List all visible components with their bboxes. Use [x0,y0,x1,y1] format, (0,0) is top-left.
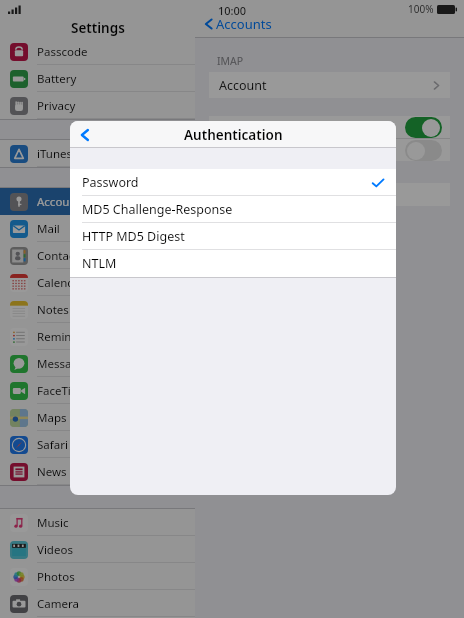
button[interactable]: FaceTime [0,377,195,404]
button[interactable]: iTunes [0,140,195,167]
staticText: Battery [37,71,77,87]
button[interactable]: Battery [0,65,195,92]
staticText: News [37,464,67,480]
button[interactable]: Password [70,169,396,196]
staticText: 100% [408,2,434,16]
staticText: Videos [37,542,73,558]
staticText: Camera [37,596,79,612]
button[interactable]: Contacts [0,242,195,269]
staticText: HTTP MD5 Digest [82,228,185,245]
staticText: Mail [37,221,60,237]
staticText: Messages [37,356,91,372]
button[interactable]: Calendar [0,269,195,296]
staticText: MD5 Challenge-Response [82,201,233,218]
staticText: Safari [37,437,68,453]
button[interactable]: Videos [0,536,195,563]
staticText: Authentication [184,126,283,144]
button[interactable]: Messages [0,350,195,377]
button[interactable]: Maps [0,404,195,431]
other: Toggle off [405,140,442,161]
button[interactable]: HTTP MD5 Digest [70,223,396,250]
staticText: Account [219,77,267,94]
staticText: IMAP [217,54,244,68]
button[interactable]: Privacy [0,92,195,119]
button[interactable]: Passcode [0,38,195,65]
staticText: Contacts [37,248,85,264]
staticText: Reminders [37,329,96,345]
staticText: Settings [71,19,125,37]
button[interactable]: Photos [0,563,195,590]
staticText: Accounts [37,194,87,210]
staticText: iTunes [37,146,72,162]
button[interactable]: Back [70,121,100,148]
button[interactable]: Safari [0,431,195,458]
button[interactable]: Notes [0,296,195,323]
button[interactable]: Reminders [0,323,195,350]
button[interactable] [209,183,450,206]
button[interactable]: Toggle off [209,139,450,161]
staticText: Notes [37,302,69,318]
staticText: Privacy [37,98,76,114]
button[interactable]: Accounts [0,188,195,215]
staticText: FaceTime [37,383,89,399]
button[interactable]: Accounts [203,15,272,33]
staticText: Passcode [37,44,88,60]
staticText: NTLM [82,255,117,272]
staticText: Maps [37,410,67,426]
other: Toggle on [405,117,442,138]
button[interactable]: Account [209,72,450,98]
staticText: Password [82,174,139,191]
staticText: Calendar [37,275,86,291]
button[interactable]: MD5 Challenge-Response [70,196,396,223]
button[interactable]: Music [0,509,195,536]
button[interactable]: NTLM [70,250,396,277]
button[interactable]: Toggle on [209,116,450,138]
staticText: Accounts [216,15,272,33]
staticText: Music [37,515,69,531]
staticText: Photos [37,569,75,585]
staticText: 10:00 [218,3,247,18]
button[interactable]: Camera [0,590,195,617]
button[interactable]: News [0,458,195,485]
button[interactable]: Mail [0,215,195,242]
